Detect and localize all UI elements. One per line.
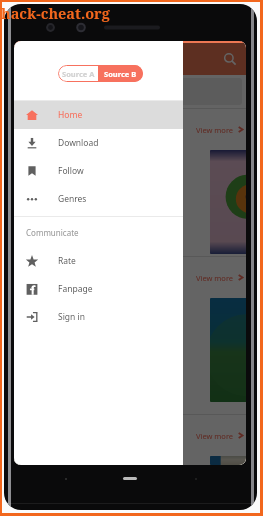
button[interactable]: Source B [98,65,143,82]
staticText: Source B [104,69,137,79]
button[interactable]: Download [14,129,183,157]
button[interactable]: New Update [24,257,245,298]
staticText: Fanpage [58,283,93,295]
staticText: MangaToon [47,51,115,67]
button[interactable]: Fanpage [14,275,183,303]
staticText: Sign in [58,311,85,323]
staticText: Follow [58,165,84,177]
button[interactable] [210,298,246,402]
staticText: Download [58,137,99,149]
button[interactable] [14,456,72,465]
staticText: Rate [58,255,76,267]
button[interactable]: Home [14,101,183,129]
button[interactable]: Hot Manga [24,109,245,150]
staticText: Genres [58,193,87,205]
button[interactable]: Completed [24,415,245,456]
button[interactable]: Source A [58,65,98,82]
staticText: New Update [24,271,84,285]
staticText: View more [196,273,234,283]
staticText: Communicate [26,227,79,238]
staticText: Hot Manga [24,123,78,137]
button[interactable]: Sign in [14,303,183,331]
staticText: View more [196,125,234,135]
button[interactable]: Search [223,52,237,66]
button[interactable] [18,78,242,105]
staticText: View more [196,431,234,441]
staticText: Source A [62,69,95,79]
button[interactable]: Rate [14,247,183,275]
staticText: Home [58,109,83,121]
button[interactable] [210,456,246,465]
button[interactable] [210,150,246,254]
button[interactable]: Follow [14,157,183,185]
staticText: hack-cheat.org [1,3,110,23]
button[interactable] [14,298,72,402]
button[interactable]: Genres [14,185,183,213]
button[interactable] [14,150,72,254]
